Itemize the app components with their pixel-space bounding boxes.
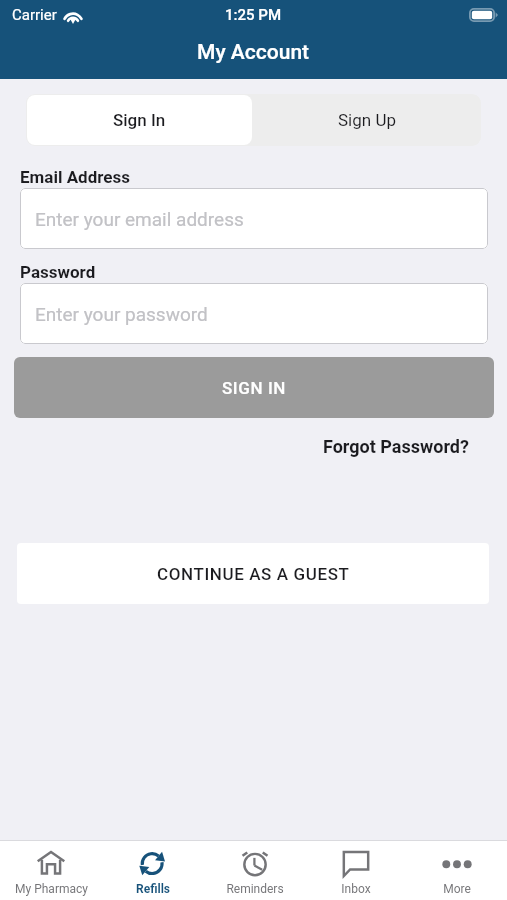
staticText: More xyxy=(443,882,471,896)
button[interactable]: SIGN IN xyxy=(14,357,494,418)
button[interactable]: Enter your email address xyxy=(20,188,488,249)
staticText: Inbox xyxy=(341,882,371,896)
staticText: Reminders xyxy=(226,882,284,896)
staticText: SIGN IN xyxy=(222,378,287,398)
button[interactable]: Reminders xyxy=(204,841,305,896)
button[interactable]: Sign Up xyxy=(253,94,481,146)
staticText: Sign In xyxy=(113,110,166,130)
button[interactable]: CONTINUE AS A GUEST xyxy=(17,543,489,604)
button[interactable]: Inbox xyxy=(305,841,406,896)
staticText: Email Address xyxy=(20,167,131,187)
staticText: My Account xyxy=(197,40,310,65)
button[interactable]: Forgot Password? xyxy=(300,436,469,457)
staticText: Password xyxy=(20,262,96,282)
staticText: My Pharmacy xyxy=(15,882,88,896)
button[interactable]: More xyxy=(406,841,507,896)
staticText: Sign Up xyxy=(338,110,396,130)
staticText: CONTINUE AS A GUEST xyxy=(157,564,350,584)
button[interactable]: Enter your password xyxy=(20,283,488,344)
staticText: Forgot Password? xyxy=(323,436,469,457)
staticText: Enter your email address xyxy=(35,208,244,230)
button[interactable]: My Pharmacy xyxy=(0,841,102,896)
staticText: Refills xyxy=(136,882,170,896)
button[interactable]: Sign In xyxy=(27,95,252,145)
staticText: 1:25 PM xyxy=(225,6,282,24)
staticText: Carrier xyxy=(12,6,57,24)
staticText: Enter your password xyxy=(35,303,208,325)
button[interactable]: Refills xyxy=(102,841,204,896)
